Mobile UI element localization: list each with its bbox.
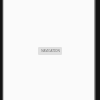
staticText: NAVIGATION (41, 49, 60, 53)
button[interactable]: NAVIGATION (38, 47, 62, 55)
